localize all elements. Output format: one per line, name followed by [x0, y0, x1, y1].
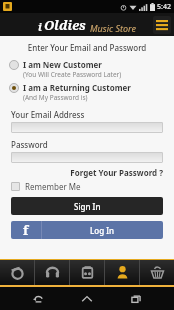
button[interactable]: I am a Returning Customer	[9, 82, 174, 102]
button[interactable]: Cart	[140, 260, 174, 285]
staticText: i	[38, 19, 42, 34]
button[interactable]: Recents	[125, 288, 147, 310]
staticText: Log In	[90, 225, 115, 236]
staticText: Sign In	[74, 201, 101, 212]
staticText: (And My Password is)	[23, 93, 88, 102]
staticText: Remember Me	[25, 181, 81, 192]
staticText: I am a Returning Customer	[23, 82, 131, 93]
button[interactable]	[11, 122, 163, 133]
button[interactable]	[11, 152, 163, 163]
button[interactable]: f	[11, 221, 163, 239]
staticText: Password	[11, 139, 48, 150]
button[interactable]: Menu	[153, 16, 171, 34]
staticText: f	[23, 221, 29, 239]
button[interactable]: Forget Your Password ?	[0, 167, 163, 178]
button[interactable]: I am New Customer	[9, 59, 174, 79]
staticText: I am New Customer	[23, 59, 102, 70]
button[interactable]: Remember Me	[11, 181, 81, 192]
button[interactable]: Movies	[0, 260, 34, 285]
button[interactable]: Music	[35, 260, 69, 285]
button[interactable]: Sign In	[11, 197, 163, 215]
staticText: Music Store	[90, 22, 136, 34]
staticText: Enter Your Email and Password	[0, 42, 174, 53]
button[interactable]: Radio	[70, 260, 104, 285]
button[interactable]: Back	[27, 288, 49, 310]
staticText: 5:42	[157, 2, 171, 12]
button[interactable]: Account	[105, 260, 139, 285]
staticText: Your Email Address	[11, 109, 85, 120]
staticText: (You Will Create Password Later)	[23, 70, 122, 79]
button[interactable]: Home	[76, 288, 98, 310]
staticText: Oldies	[44, 16, 86, 34]
